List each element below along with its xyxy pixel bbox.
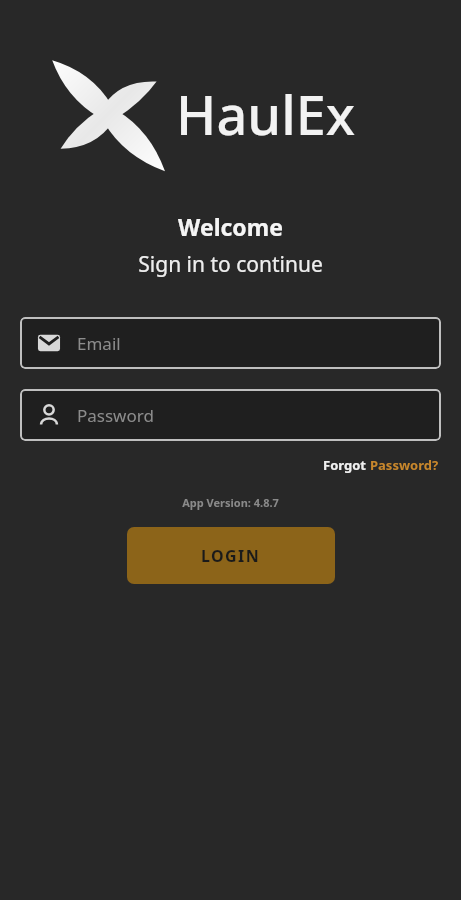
other: Username [37, 403, 61, 427]
staticText: Password? [370, 456, 439, 474]
other: Email [37, 331, 61, 355]
button[interactable]: Email [20, 317, 441, 369]
staticText: Password [77, 404, 154, 427]
staticText: Email [77, 332, 121, 355]
staticText: HaulEx [176, 77, 356, 151]
staticText: Forgot [323, 456, 370, 474]
staticText: LOGIN [201, 545, 261, 567]
button[interactable]: Forgot [321, 453, 441, 477]
staticText: Welcome [178, 211, 283, 242]
button[interactable]: Username [20, 389, 441, 441]
other: HaulEx logo [48, 55, 168, 173]
button[interactable]: LOGIN [127, 527, 335, 584]
staticText: App Version: 4.8.7 [182, 495, 279, 510]
staticText: Sign in to continue [138, 250, 323, 279]
